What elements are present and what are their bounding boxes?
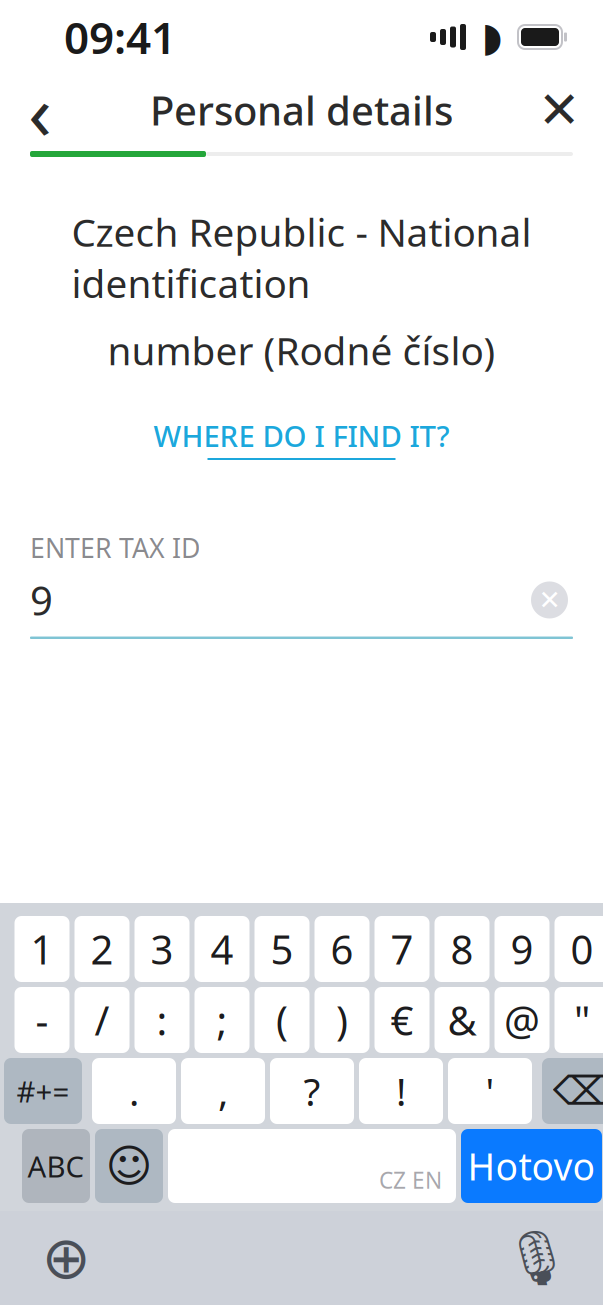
button[interactable]: ABC [22, 1129, 90, 1203]
button[interactable]: 7 [374, 916, 429, 982]
button[interactable]: 1 [14, 916, 69, 982]
button[interactable]: 2 [74, 916, 129, 982]
button[interactable]: : [134, 987, 189, 1053]
button[interactable]: Close [531, 80, 587, 140]
staticText: number (Rodné číslo) [107, 325, 495, 376]
staticText: , [218, 1065, 228, 1117]
staticText: € [390, 993, 413, 1046]
button[interactable]: @ [494, 987, 549, 1053]
staticText: 5 [270, 922, 293, 975]
staticText: CZ EN [379, 1165, 442, 1195]
staticText: ENTER TAX ID [30, 530, 200, 565]
staticText: 2 [90, 922, 113, 975]
button[interactable]: ; [194, 987, 249, 1053]
button[interactable]: / [74, 987, 129, 1053]
button[interactable]: . [92, 1058, 176, 1124]
button[interactable]: & [434, 987, 489, 1053]
staticText: #+= [16, 1071, 69, 1110]
button[interactable]: € [374, 987, 429, 1053]
button[interactable]: 5 [254, 916, 309, 982]
staticText: 9 [510, 922, 533, 975]
button[interactable]: 4 [194, 916, 249, 982]
button[interactable]: WHERE DO I FIND IT? [141, 408, 461, 468]
staticText: ( [276, 993, 288, 1046]
staticText: 1 [30, 922, 53, 975]
button[interactable]: 8 [434, 916, 489, 982]
button[interactable]: ' [448, 1058, 532, 1124]
staticText: . [129, 1065, 139, 1117]
button[interactable]: ! [359, 1058, 443, 1124]
staticText: Czech Republic - National identification [71, 206, 531, 309]
staticText: ) [336, 993, 348, 1046]
button[interactable]: ? [270, 1058, 354, 1124]
staticText: ? [303, 1065, 320, 1117]
staticText: Hotovo [467, 1141, 595, 1191]
staticText: ✕ [538, 81, 580, 139]
staticText: 4 [210, 922, 233, 975]
button[interactable]: ) [314, 987, 369, 1053]
button[interactable]: Space [168, 1129, 456, 1203]
staticText: - [35, 993, 48, 1046]
button[interactable]: 3 [134, 916, 189, 982]
staticText: 🎙 [503, 1227, 571, 1288]
staticText: 8 [450, 922, 473, 975]
staticText: " [574, 993, 590, 1046]
staticText: ABC [27, 1146, 84, 1185]
button[interactable]: 9 [494, 916, 549, 982]
staticText: 0 [570, 922, 593, 975]
staticText: ☺ [105, 1140, 152, 1192]
staticText: ‹ [28, 59, 52, 161]
button[interactable]: - [14, 987, 69, 1053]
button[interactable]: Dictation [499, 1220, 575, 1296]
button[interactable]: " [554, 987, 603, 1053]
staticText: WHERE DO I FIND IT? [153, 416, 449, 455]
button[interactable]: Hotovo [461, 1129, 602, 1203]
staticText: ⊕ [41, 1225, 90, 1291]
button[interactable]: Emoji [95, 1129, 163, 1203]
staticText: ; [216, 993, 227, 1046]
staticText: 09:41 [64, 8, 176, 66]
staticText: 7 [390, 922, 413, 975]
button[interactable]: Clear text [526, 576, 573, 623]
staticText: ✕ [538, 585, 560, 615]
button[interactable]: , [181, 1058, 265, 1124]
staticText: 9 [30, 573, 53, 626]
staticText: ' [485, 1065, 494, 1117]
staticText: ⌫ [552, 1068, 603, 1114]
button[interactable]: 6 [314, 916, 369, 982]
button[interactable]: ( [254, 987, 309, 1053]
button[interactable]: Delete [542, 1058, 603, 1124]
button[interactable]: 0 [554, 916, 603, 982]
staticText: ◗ [481, 14, 502, 60]
staticText: @ [504, 993, 540, 1046]
button[interactable]: Back [12, 80, 68, 140]
staticText: 3 [150, 922, 173, 975]
button[interactable]: #+= [4, 1058, 82, 1124]
staticText: ! [396, 1065, 406, 1117]
button[interactable]: Change keyboard language [28, 1220, 104, 1296]
staticText: / [94, 993, 109, 1046]
staticText: : [156, 993, 167, 1046]
staticText: 6 [330, 922, 353, 975]
staticText: Personal details [150, 83, 453, 136]
staticText: & [447, 993, 476, 1046]
